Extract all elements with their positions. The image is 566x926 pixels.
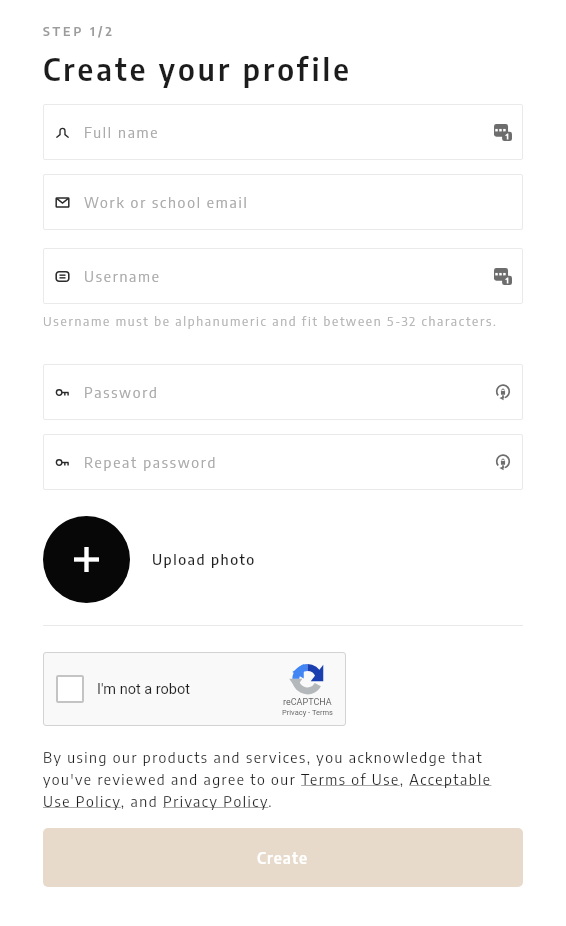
staticText: Full name xyxy=(84,123,494,142)
staticText: Upload photo xyxy=(152,550,256,569)
staticText: reCAPTCHA xyxy=(283,697,332,708)
button[interactable]: Username xyxy=(43,248,523,304)
button[interactable]: Work or school email xyxy=(43,174,523,230)
staticText: Work or school email xyxy=(84,193,523,212)
staticText: By using our products and services, you … xyxy=(43,748,508,810)
staticText: STEP 1/2 xyxy=(43,23,115,39)
button[interactable]: Full name xyxy=(43,104,523,160)
staticText: Create your profile xyxy=(43,49,352,88)
button[interactable]: Password xyxy=(43,364,523,420)
button[interactable]: Upload photo xyxy=(43,516,130,603)
staticText: Create xyxy=(257,848,309,868)
staticText: Repeat password xyxy=(84,453,494,472)
button[interactable]: Repeat password xyxy=(43,434,523,490)
staticText: Username must be alphanumeric and fit be… xyxy=(43,313,498,329)
staticText: Password xyxy=(84,383,494,402)
button[interactable]: I'm not a robot xyxy=(43,652,346,726)
staticText: I'm not a robot xyxy=(97,681,190,698)
staticText: Privacy - Terms xyxy=(282,708,333,717)
staticText: Username xyxy=(84,267,494,286)
button[interactable]: Create xyxy=(43,828,523,887)
